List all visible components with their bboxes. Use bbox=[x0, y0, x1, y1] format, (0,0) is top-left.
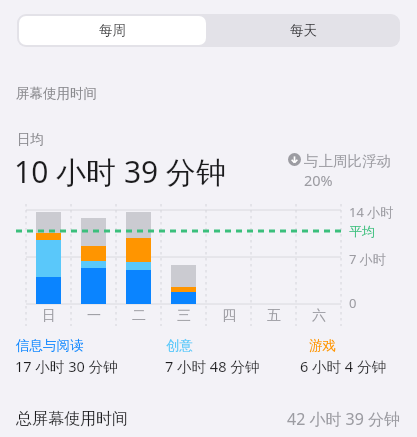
other: Decreased bbox=[288, 153, 301, 166]
staticText: 六 bbox=[312, 307, 326, 325]
staticText: 6 小时 4 分钟 bbox=[300, 356, 386, 376]
staticText: 0 bbox=[349, 294, 357, 312]
staticText: 五 bbox=[267, 307, 281, 325]
staticText: 三 bbox=[177, 307, 191, 325]
staticText: 平均 bbox=[349, 223, 375, 239]
staticText: 日均 bbox=[17, 131, 44, 148]
staticText: 每周 bbox=[99, 22, 126, 39]
button[interactable]: 总屏幕使用时间 bbox=[0, 403, 417, 435]
staticText: 7 小时 bbox=[349, 250, 386, 268]
staticText: 创意 bbox=[166, 337, 193, 354]
staticText: 每天 bbox=[290, 22, 317, 39]
staticText: 屏幕使用时间 bbox=[16, 85, 97, 102]
button[interactable]: 每天 bbox=[208, 16, 398, 45]
staticText: 总屏幕使用时间 bbox=[16, 409, 128, 429]
staticText: 四 bbox=[222, 307, 236, 325]
staticText: 二 bbox=[132, 307, 146, 325]
staticText: 日 bbox=[42, 307, 56, 325]
staticText: 14 小时 bbox=[349, 203, 394, 221]
staticText: 17 小时 30 分钟 bbox=[15, 356, 118, 376]
staticText: 一 bbox=[87, 307, 101, 325]
staticText: 信息与阅读 bbox=[16, 337, 84, 354]
staticText: 与上周比浮动 20% bbox=[304, 150, 412, 190]
staticText: 10 小时 39 分钟 bbox=[14, 151, 227, 192]
button[interactable]: 每周 bbox=[19, 16, 206, 45]
staticText: 游戏 bbox=[309, 337, 336, 354]
staticText: 7 小时 48 分钟 bbox=[165, 356, 260, 376]
staticText: 42 小时 39 分钟 bbox=[287, 408, 401, 430]
